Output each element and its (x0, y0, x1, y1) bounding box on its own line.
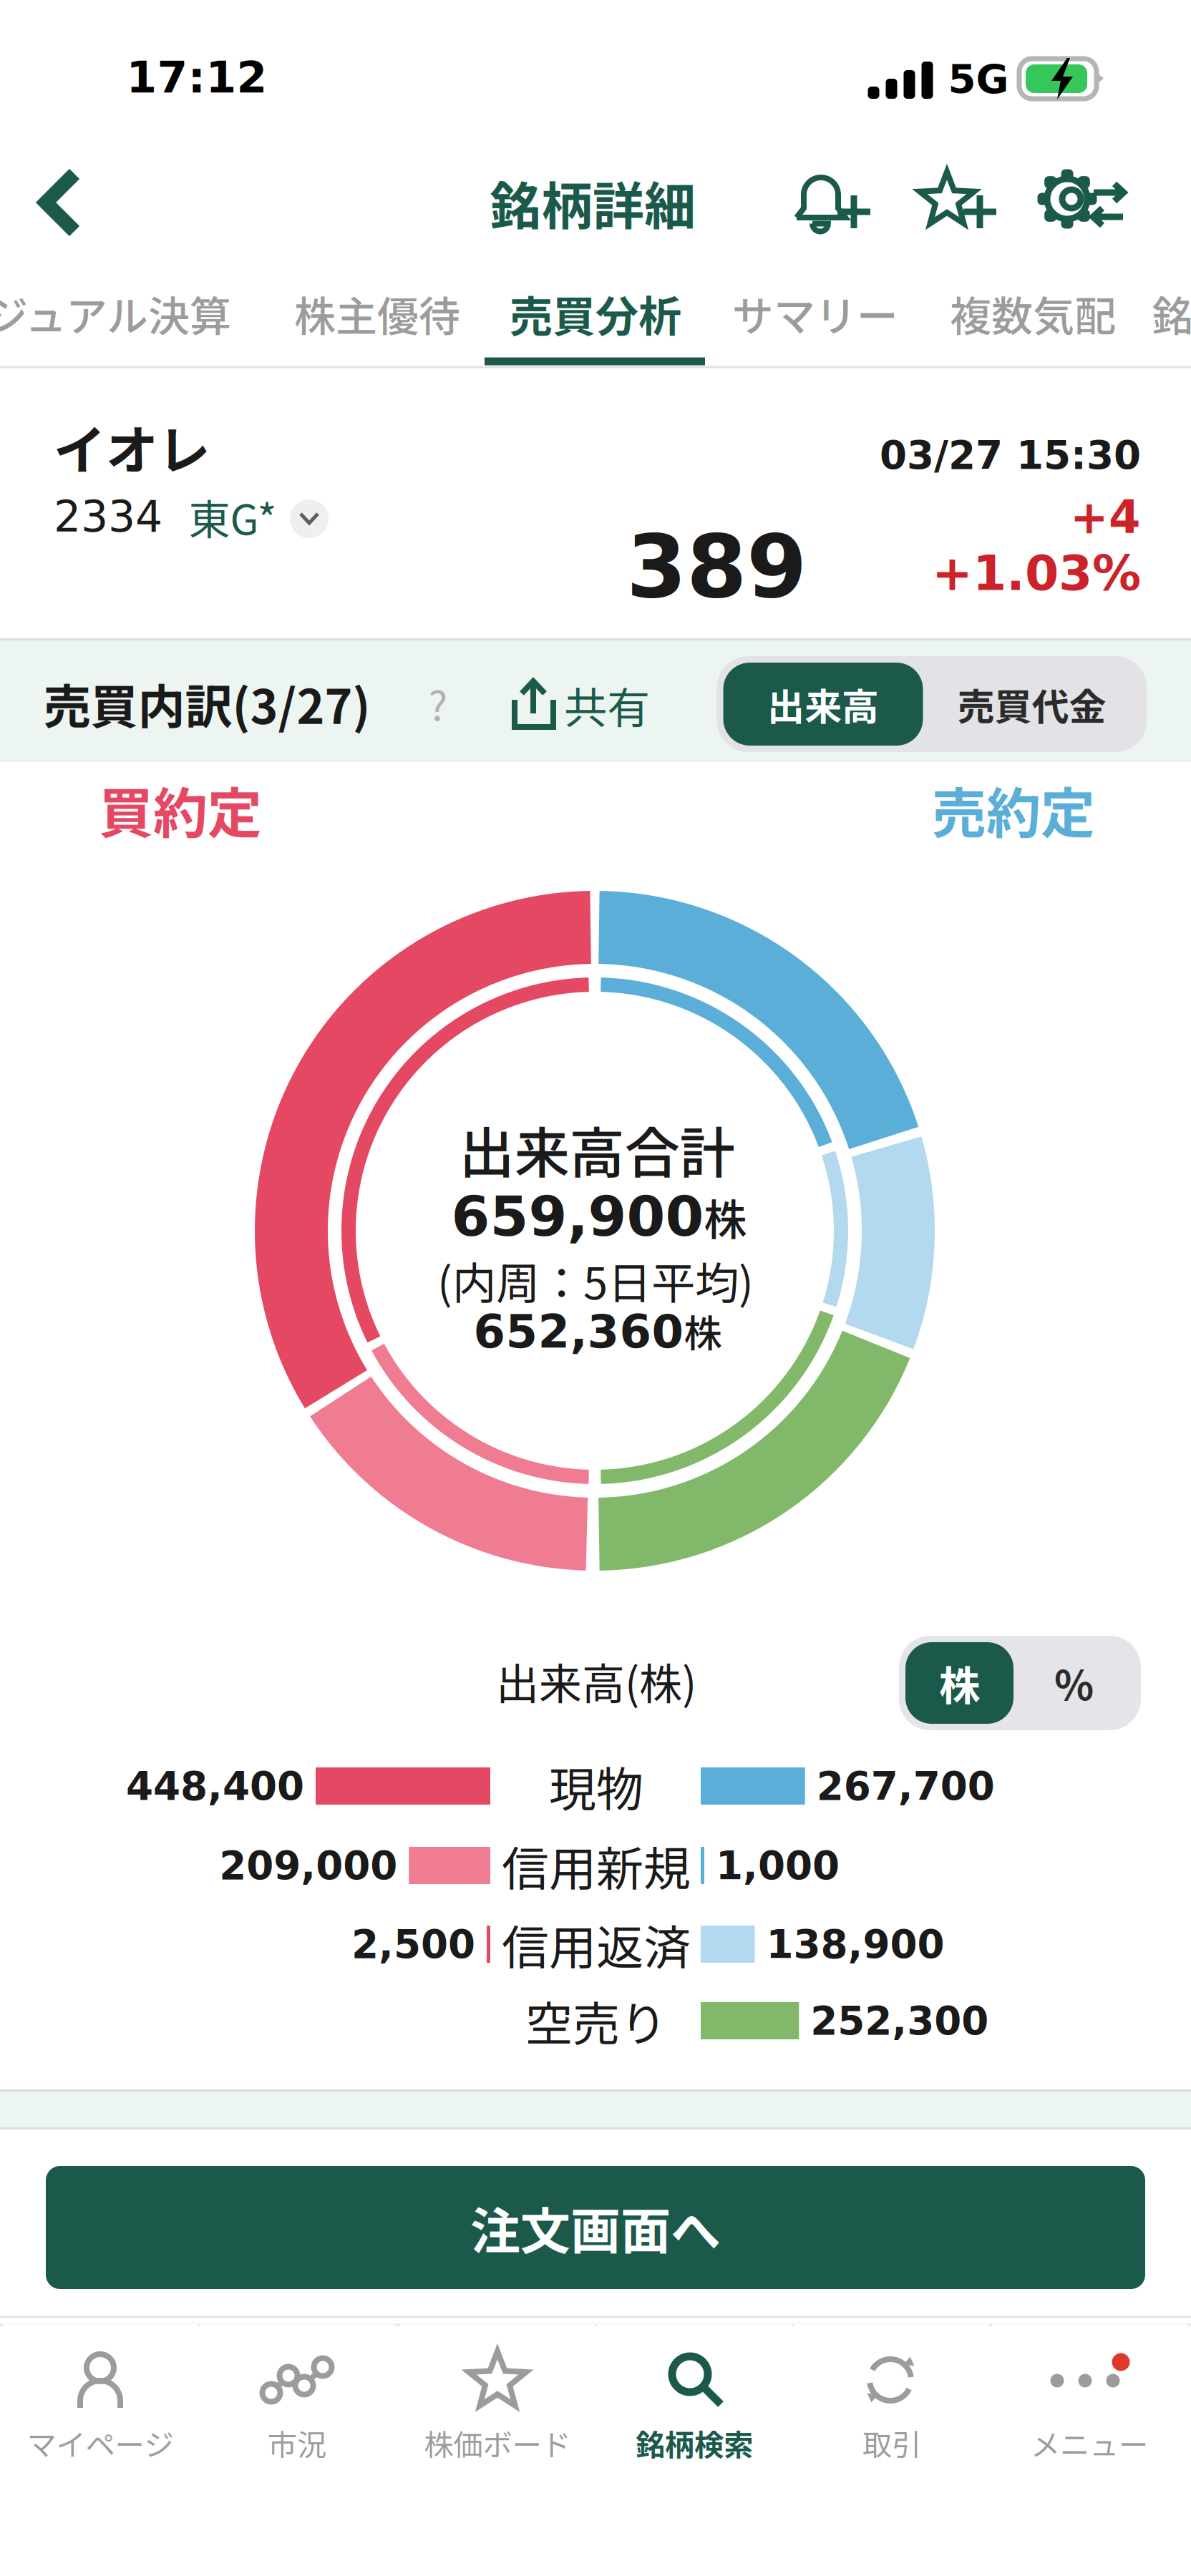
button[interactable]: ジュアル決算 (0, 266, 252, 361)
staticText: +4 (1070, 491, 1141, 544)
button[interactable]: 共有 (507, 669, 650, 738)
staticText: 売買分析 (510, 282, 681, 345)
button[interactable]: 出来高 (723, 663, 923, 746)
staticText: 652,360 (473, 1305, 684, 1358)
staticText: 448,400 (126, 1763, 304, 1809)
staticText: イオレ (53, 409, 210, 485)
button[interactable]: サマリー (722, 266, 908, 361)
staticText: 出来高合計 (459, 1109, 735, 1189)
staticText: % (1054, 1653, 1094, 1713)
button[interactable]: メニュー (992, 2324, 1187, 2474)
staticText: 株 (939, 1653, 980, 1713)
button[interactable]: 株主優待 (284, 266, 470, 361)
staticText: ジュアル決算 (0, 283, 231, 343)
staticText: 東G* (189, 487, 277, 547)
staticText: 銘 (1152, 283, 1191, 343)
staticText: ? (428, 674, 448, 732)
staticText: メニュー (1031, 2422, 1148, 2464)
button[interactable]: 設定 (1036, 155, 1132, 250)
staticText: 株 (704, 1186, 747, 1248)
button[interactable]: マイページ (3, 2324, 198, 2474)
staticText: 03/27 15:30 (880, 432, 1141, 478)
staticText: 267,700 (816, 1763, 995, 1809)
staticText: 空売り (525, 1987, 667, 2055)
staticText: 売買内訳(3/27) (43, 669, 370, 738)
staticText: 138,900 (766, 1921, 944, 1967)
staticText: 売約定 (932, 770, 1095, 849)
staticText: 209,000 (219, 1843, 397, 1888)
staticText: 株 (684, 1303, 722, 1359)
staticText: 注文画面へ (470, 2191, 721, 2264)
staticText: 銘柄検索 (636, 2422, 753, 2464)
button[interactable]: 取引 (794, 2324, 989, 2474)
staticText: (内周：5日平均) (437, 1248, 754, 1312)
staticText: 389 (626, 516, 807, 617)
button[interactable]: 売買分析 (499, 266, 692, 361)
staticText: 5G (948, 55, 1009, 102)
staticText: 出来高 (767, 677, 879, 731)
button[interactable]: アラート追加 (786, 155, 882, 250)
staticText: 2334 (54, 492, 162, 542)
staticText: 出来高(株) (496, 1650, 696, 1712)
button[interactable]: 複数気配 (940, 266, 1126, 361)
staticText: 売買代金 (957, 677, 1106, 731)
staticText: 659,900 (451, 1184, 704, 1249)
button[interactable]: % (1013, 1642, 1134, 1724)
staticText: 銘柄詳細 (490, 165, 696, 240)
staticText: 買約定 (99, 770, 262, 849)
staticText: 17:12 (126, 52, 267, 103)
button[interactable]: ヘルプ (407, 673, 469, 734)
staticText: 2,500 (351, 1921, 475, 1967)
staticText: 信用返済 (502, 1910, 691, 1978)
staticText: サマリー (732, 283, 898, 343)
staticText: 信用新規 (502, 1831, 691, 1900)
staticText: 現物 (549, 1752, 643, 1820)
button[interactable]: 銘柄検索 (597, 2324, 792, 2474)
button[interactable]: 注文画面へ (46, 2166, 1145, 2289)
button[interactable]: 戻る (6, 149, 114, 256)
button[interactable]: 市況 (200, 2324, 394, 2474)
staticText: 1,000 (716, 1843, 840, 1888)
staticText: 市況 (268, 2422, 326, 2464)
staticText: マイページ (27, 2422, 174, 2464)
button[interactable]: 売買代金 (923, 663, 1141, 746)
staticText: 株主優待 (294, 283, 460, 343)
staticText: 共有 (564, 674, 650, 736)
staticText: 252,300 (810, 1998, 989, 2043)
button[interactable]: 株 (905, 1642, 1013, 1724)
button[interactable]: お気に入り追加 (911, 155, 1007, 250)
staticText: 複数気配 (950, 283, 1116, 343)
staticText: 取引 (862, 2422, 921, 2464)
button[interactable]: 株価ボード (400, 2324, 595, 2474)
button[interactable]: 銘 (1147, 266, 1191, 361)
staticText: +1.03% (932, 545, 1141, 601)
staticText: 株価ボード (424, 2422, 571, 2464)
